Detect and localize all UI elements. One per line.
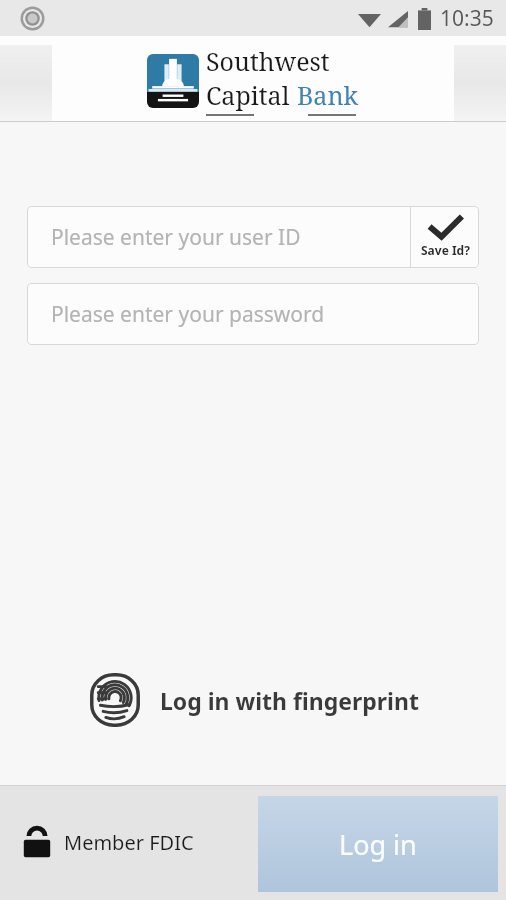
button[interactable]: Please enter your password: [27, 283, 479, 345]
staticText: Capital: [206, 78, 290, 112]
button[interactable]: Member FDIC: [22, 825, 194, 860]
button[interactable]: Please enter your user ID: [27, 206, 410, 268]
button[interactable]: Save Id: [411, 206, 479, 268]
staticText: Save Id?: [421, 242, 470, 258]
other: Camera: [20, 6, 45, 31]
button[interactable]: Log in with fingerprint: [78, 665, 429, 735]
button[interactable]: Log in: [258, 796, 498, 892]
staticText: Southwest: [206, 44, 330, 78]
staticText: Log in with fingerprint: [160, 685, 419, 716]
staticText: Member FDIC: [64, 829, 194, 856]
staticText: Please enter your user ID: [51, 223, 301, 252]
staticText: Please enter your password: [51, 300, 325, 329]
staticText: 10:35: [440, 4, 494, 33]
button[interactable]: Southwest Capital Bank: [147, 44, 359, 118]
staticText: Log in: [339, 826, 417, 863]
staticText: Bank: [297, 78, 359, 112]
